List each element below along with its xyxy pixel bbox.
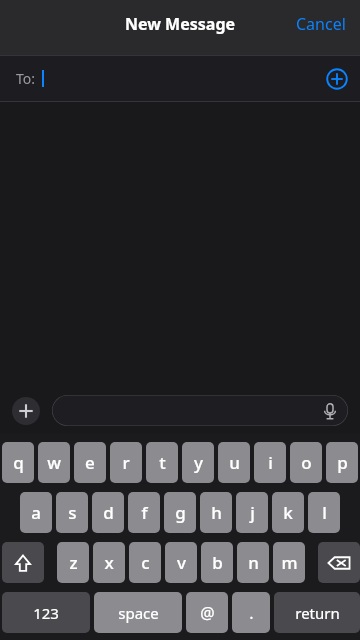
- staticText: 123: [33, 603, 59, 623]
- staticText: j: [250, 501, 255, 524]
- staticText: a: [31, 501, 41, 524]
- button[interactable]: .: [232, 592, 270, 633]
- button[interactable]: w: [38, 442, 70, 483]
- staticText: To:: [16, 69, 36, 88]
- button[interactable]: l: [308, 492, 340, 533]
- other: Dictate: [320, 401, 340, 421]
- button[interactable]: q: [2, 442, 34, 483]
- staticText: c: [141, 551, 150, 574]
- staticText: p: [337, 451, 348, 474]
- button[interactable]: u: [218, 442, 250, 483]
- staticText: New Message: [125, 13, 236, 35]
- staticText: g: [175, 501, 186, 524]
- staticText: d: [103, 501, 114, 524]
- button[interactable]: r: [110, 442, 142, 483]
- button[interactable]: t: [146, 442, 178, 483]
- button[interactable]: space: [94, 592, 182, 633]
- staticText: b: [212, 551, 223, 574]
- button[interactable]: z: [57, 542, 89, 583]
- staticText: i: [268, 451, 273, 474]
- staticText: return: [295, 603, 340, 623]
- button[interactable]: m: [273, 542, 305, 583]
- staticText: t: [159, 451, 166, 474]
- button[interactable]: j: [236, 492, 268, 533]
- staticText: e: [85, 451, 95, 474]
- staticText: .: [249, 602, 254, 624]
- button[interactable]: Dictate: [52, 395, 348, 426]
- button[interactable]: p: [326, 442, 358, 483]
- button[interactable]: Cancel: [282, 7, 360, 41]
- staticText: w: [47, 451, 61, 474]
- staticText: o: [301, 451, 312, 474]
- button[interactable]: s: [56, 492, 88, 533]
- button[interactable]: To:: [0, 56, 360, 101]
- button[interactable]: b: [201, 542, 233, 583]
- staticText: u: [229, 451, 240, 474]
- staticText: k: [283, 501, 293, 524]
- staticText: r: [122, 451, 130, 474]
- button[interactable]: v: [165, 542, 197, 583]
- staticText: x: [104, 551, 114, 574]
- staticText: q: [13, 451, 24, 474]
- button[interactable]: Add attachment: [12, 397, 40, 425]
- button[interactable]: 123: [2, 592, 90, 633]
- staticText: v: [177, 551, 186, 574]
- staticText: z: [69, 551, 78, 574]
- button[interactable]: o: [290, 442, 322, 483]
- staticText: Cancel: [296, 13, 346, 35]
- staticText: f: [141, 501, 148, 524]
- staticText: y: [194, 451, 203, 474]
- button[interactable]: c: [129, 542, 161, 583]
- staticText: n: [248, 551, 259, 574]
- button[interactable]: n: [237, 542, 269, 583]
- button[interactable]: @: [186, 592, 228, 633]
- button[interactable]: a: [20, 492, 52, 533]
- button[interactable]: g: [164, 492, 196, 533]
- staticText: s: [68, 501, 77, 524]
- button[interactable]: e: [74, 442, 106, 483]
- staticText: h: [211, 501, 222, 524]
- staticText: l: [322, 501, 327, 524]
- staticText: @: [200, 602, 215, 624]
- button[interactable]: f: [128, 492, 160, 533]
- button[interactable]: Shift: [2, 542, 44, 583]
- button[interactable]: Backspace: [318, 542, 360, 583]
- button[interactable]: k: [272, 492, 304, 533]
- button[interactable]: y: [182, 442, 214, 483]
- staticText: m: [281, 551, 298, 574]
- button[interactable]: i: [254, 442, 286, 483]
- button[interactable]: h: [200, 492, 232, 533]
- button[interactable]: x: [93, 542, 125, 583]
- button[interactable]: return: [274, 592, 360, 633]
- button[interactable]: d: [92, 492, 124, 533]
- staticText: space: [118, 603, 159, 623]
- button[interactable]: Add contact: [326, 68, 348, 90]
